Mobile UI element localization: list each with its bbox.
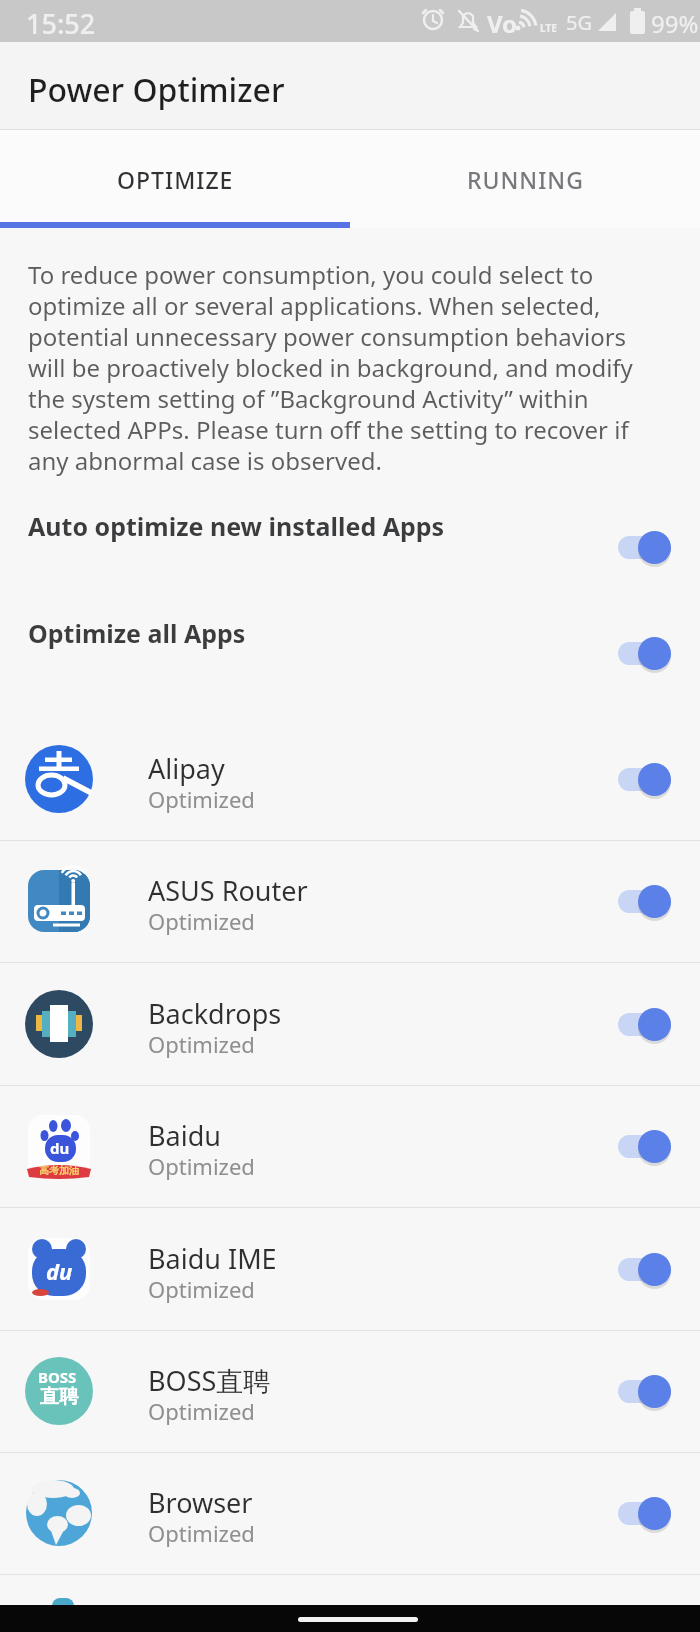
button[interactable] <box>618 762 671 796</box>
staticText: ASUS Router <box>148 872 308 909</box>
staticText: Alipay <box>148 750 225 787</box>
staticText: Optimize all Apps <box>28 616 246 650</box>
staticText: 直聘 <box>40 1385 78 1409</box>
staticText: the system setting of ”Background Activi… <box>28 382 589 415</box>
button[interactable] <box>0 1085 700 1207</box>
staticText: RUNNING <box>467 164 584 195</box>
button[interactable] <box>0 1208 700 1330</box>
button[interactable] <box>618 636 671 670</box>
staticText: 99% <box>651 7 699 40</box>
staticText: will be proactively blocked in backgroun… <box>28 351 633 384</box>
staticText: optimize all or several applications. Wh… <box>28 289 601 322</box>
button[interactable] <box>618 1007 671 1041</box>
button[interactable] <box>618 530 671 564</box>
staticText: Optimized <box>148 784 255 814</box>
staticText: Optimized <box>148 1151 255 1181</box>
button[interactable] <box>618 1252 671 1286</box>
staticText: Baidu <box>148 1117 221 1154</box>
button[interactable] <box>618 1496 671 1530</box>
staticText: Optimized <box>148 1396 255 1426</box>
button[interactable] <box>0 1452 700 1574</box>
staticText: Baidu IME <box>148 1240 277 1277</box>
staticText: Browser <box>148 1484 253 1521</box>
staticText: 5G <box>566 9 592 36</box>
staticText: 高考加油 <box>39 1164 79 1177</box>
staticText: du <box>46 1256 73 1286</box>
staticText: BOSS直聘 <box>148 1362 271 1399</box>
staticText: selected APPs. Please turn off the setti… <box>28 413 629 446</box>
staticText: potential unnecessary power consumption … <box>28 320 627 353</box>
staticText: Optimized <box>148 1518 255 1548</box>
staticText: Backdrops <box>148 995 282 1032</box>
staticText: Optimized <box>148 906 255 936</box>
staticText: Optimized <box>148 1274 255 1304</box>
staticText: Auto optimize new installed Apps <box>28 509 445 543</box>
button[interactable] <box>618 884 671 918</box>
staticText: OPTIMIZE <box>117 164 234 195</box>
button[interactable] <box>618 1129 671 1163</box>
staticText: 15:52 <box>26 5 96 42</box>
button[interactable] <box>0 1330 700 1452</box>
button[interactable] <box>0 840 700 962</box>
staticText: du <box>50 1138 70 1158</box>
staticText: Optimized <box>148 1029 255 1059</box>
button[interactable] <box>0 963 700 1085</box>
button[interactable]: OPTIMIZE <box>0 130 350 228</box>
button[interactable]: RUNNING <box>350 130 700 228</box>
staticText: BOSS <box>38 1367 77 1387</box>
button[interactable] <box>0 718 700 840</box>
staticText: LTE <box>540 21 557 35</box>
button[interactable] <box>618 1374 671 1408</box>
staticText: To reduce power consumption, you could s… <box>28 258 594 291</box>
staticText: Vo <box>487 7 518 40</box>
staticText: Power Optimizer <box>28 68 285 112</box>
staticText: any abnormal case is observed. <box>28 444 382 477</box>
